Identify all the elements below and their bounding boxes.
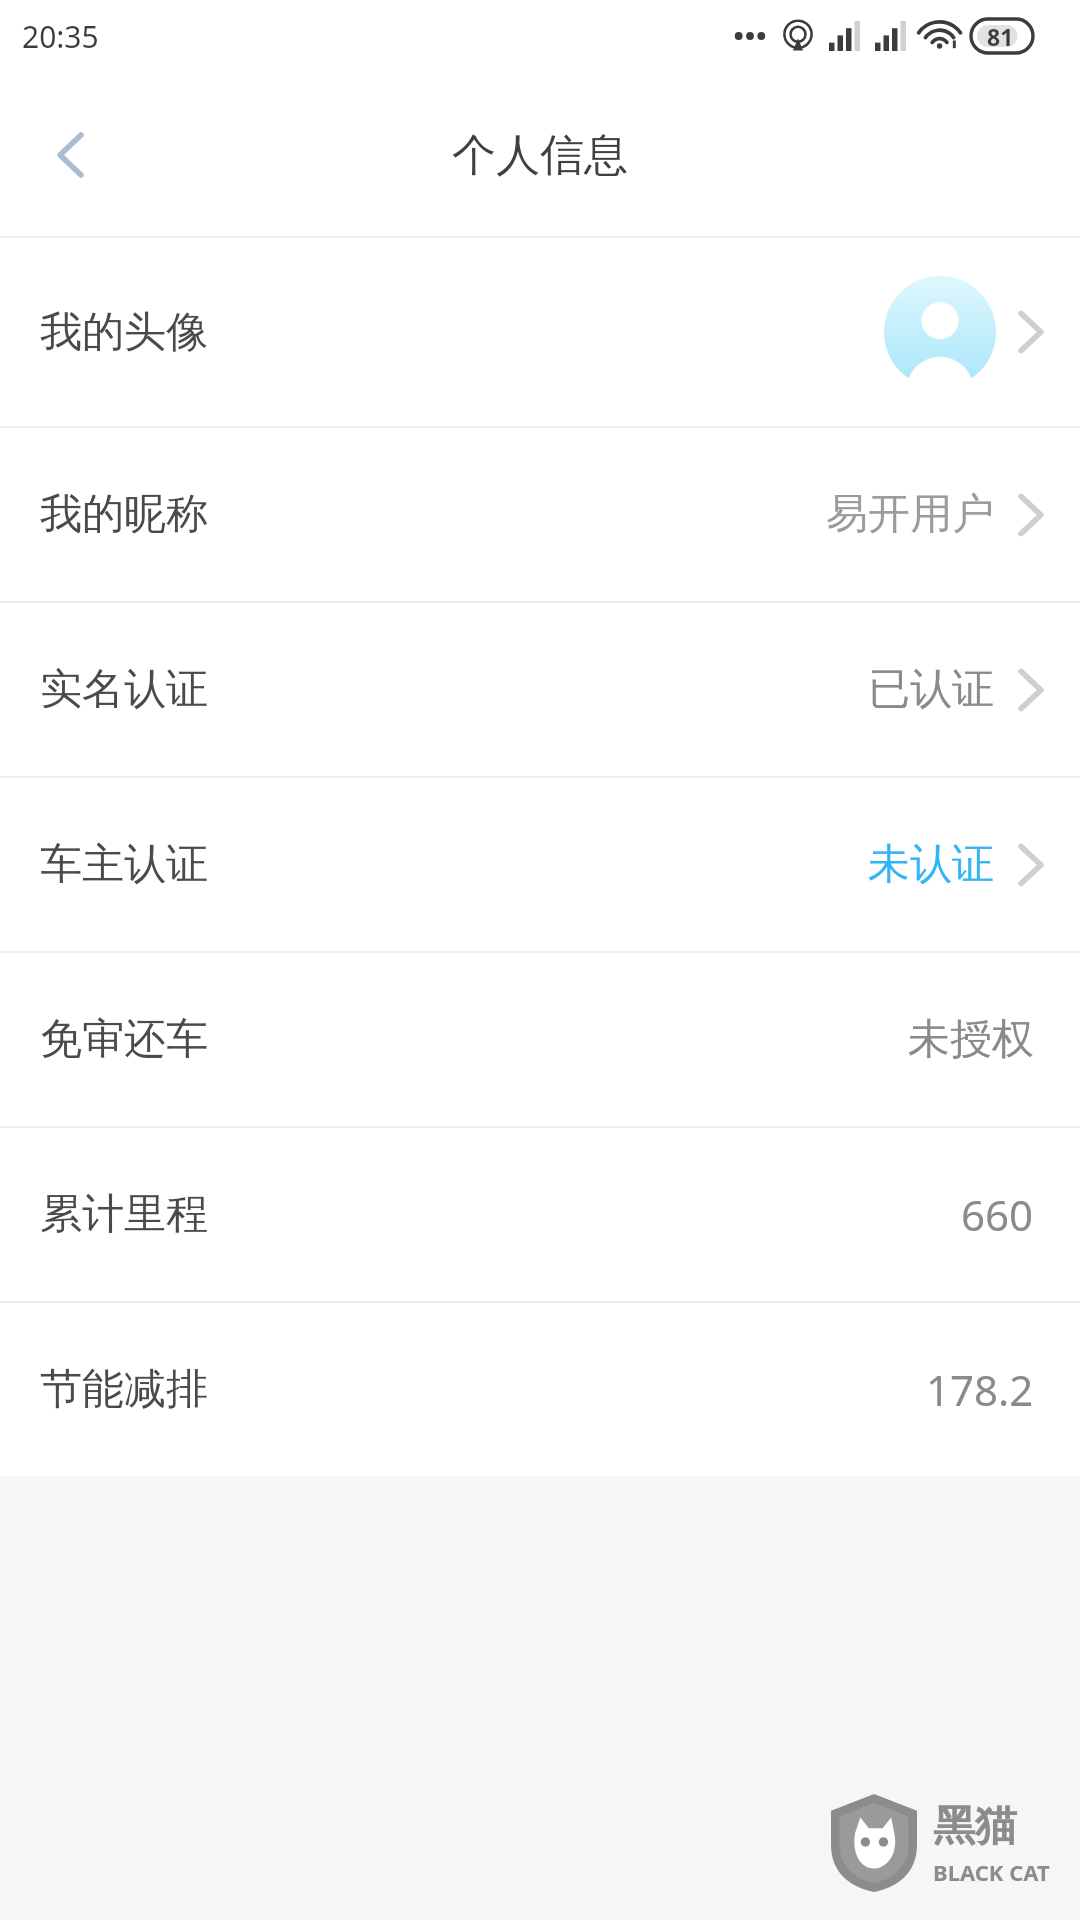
staticText: 免审还车: [40, 1013, 208, 1066]
staticText: 20:35: [22, 16, 99, 57]
staticText: 车主认证: [40, 838, 208, 891]
staticText: 个人信息: [452, 128, 628, 183]
staticText: 未认证: [868, 838, 994, 891]
staticText: 81: [987, 21, 1014, 52]
staticText: 易开用户: [826, 488, 994, 541]
staticText: 已认证: [868, 663, 994, 716]
button[interactable]: 累计里程: [0, 1128, 1080, 1301]
button[interactable]: 免审还车: [0, 953, 1080, 1126]
staticText: 黑猫: [933, 1800, 1017, 1853]
button[interactable]: 我的昵称: [0, 428, 1080, 601]
staticText: BLACK CAT: [933, 1857, 1050, 1887]
staticText: 节能减排: [40, 1363, 208, 1416]
staticText: 累计里程: [40, 1188, 208, 1241]
button[interactable]: 实名认证: [0, 603, 1080, 776]
staticText: 178.2: [926, 1361, 1034, 1418]
staticText: 未授权: [908, 1013, 1034, 1066]
staticText: 我的头像: [40, 306, 208, 359]
button[interactable]: 我的头像: [0, 238, 1080, 426]
button[interactable]: 车主认证: [0, 778, 1080, 951]
button[interactable]: Back: [24, 107, 120, 203]
staticText: 660: [961, 1186, 1034, 1243]
staticText: 我的昵称: [40, 488, 208, 541]
button[interactable]: 节能减排: [0, 1303, 1080, 1476]
staticText: 实名认证: [40, 663, 208, 716]
